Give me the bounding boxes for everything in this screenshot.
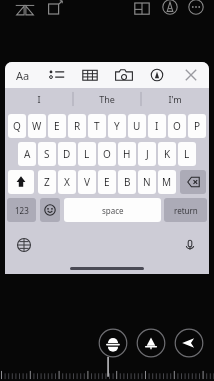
button[interactable]: R [68,114,86,138]
staticText: Aa [16,68,30,83]
staticText: return [174,205,198,216]
staticText: B [124,175,131,189]
button[interactable]: I [5,88,73,110]
button[interactable]: Rotate [45,0,65,16]
button[interactable]: W [28,114,46,138]
staticText: L [84,147,90,161]
button[interactable]: Close [176,62,206,88]
button[interactable]: E [48,114,66,138]
button[interactable]: L [178,142,196,166]
button[interactable]: Send [174,328,204,358]
staticText: D [63,147,71,161]
staticText: V [84,175,90,189]
button[interactable]: I [148,114,166,138]
staticText: R [74,119,81,133]
button[interactable]: U [128,114,146,138]
button[interactable]: More [186,0,206,17]
button[interactable]: Layout [132,0,152,17]
button[interactable]: H [118,142,136,166]
button[interactable]: Shape [98,328,128,358]
button[interactable]: Table [75,62,105,88]
staticText: J [146,147,149,161]
button[interactable]: Alert [136,328,166,358]
staticText: I [155,119,159,133]
staticText: The [99,93,115,105]
button[interactable]: Text format [8,62,38,88]
staticText: Y [114,119,120,133]
staticText: O [103,147,111,161]
button[interactable]: N [138,170,156,194]
button[interactable]: J [138,142,156,166]
button[interactable]: S [38,142,56,166]
button[interactable]: Backspace [180,170,206,194]
button[interactable]: M [158,170,176,194]
button[interactable]: 123 [7,198,36,222]
button[interactable]: E [98,170,116,194]
button[interactable]: O [168,114,186,138]
button[interactable]: Dictate [181,236,199,254]
button[interactable]: List [42,62,72,88]
button[interactable]: I'm [141,88,209,110]
staticText: L [184,147,190,161]
staticText: T [94,119,100,133]
staticText: E [104,175,110,189]
staticText: S [44,147,50,161]
staticText: 123 [15,205,29,216]
button[interactable]: V [78,170,96,194]
staticText: W [32,119,42,133]
button[interactable]: Y [108,114,126,138]
staticText: N [143,175,151,189]
button[interactable]: K [158,142,176,166]
staticText: E [54,119,60,133]
staticText: K [164,147,171,161]
staticText: X [64,175,70,189]
button[interactable]: T [88,114,106,138]
button[interactable]: A [18,142,36,166]
button[interactable]: Change keyboard [15,236,33,254]
button[interactable]: Q [8,114,26,138]
button[interactable]: L [78,142,96,166]
button[interactable]: Z [38,170,56,194]
staticText: U [133,119,141,133]
staticText: space [102,205,124,216]
staticText: M [162,175,172,189]
button[interactable]: O [98,142,116,166]
staticText: Z [44,175,50,189]
staticText: Q [13,119,21,133]
button[interactable]: X [58,170,76,194]
button[interactable]: Markup [160,0,180,17]
button[interactable]: Emoji [40,198,60,222]
staticText: I'm [168,93,182,105]
button[interactable]: return [164,198,207,222]
button[interactable]: Camera [109,62,139,88]
button[interactable]: Shift [8,170,34,194]
button[interactable]: Flip [14,0,36,16]
button[interactable]: space [64,198,161,222]
button[interactable]: Markup [142,62,172,88]
button[interactable]: P [188,114,206,138]
staticText: O [173,119,181,133]
button[interactable]: B [118,170,136,194]
button[interactable]: D [58,142,76,166]
button[interactable]: The [73,88,141,110]
staticText: H [123,147,131,161]
staticText: P [194,119,201,133]
staticText: A [24,147,31,161]
staticText: I [37,93,41,105]
